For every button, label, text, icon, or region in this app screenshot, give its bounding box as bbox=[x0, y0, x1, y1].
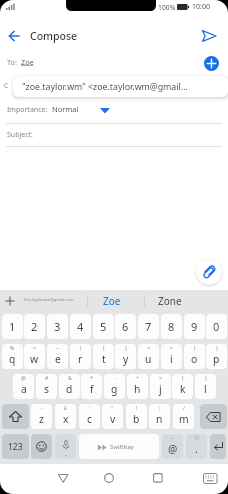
button[interactable]: ~ bbox=[47, 344, 68, 369]
button[interactable] bbox=[2, 292, 20, 310]
staticText: 0 bbox=[213, 319, 220, 334]
staticText: h bbox=[134, 382, 141, 396]
button[interactable] bbox=[148, 468, 168, 487]
staticText: C bbox=[4, 81, 9, 90]
staticText: r bbox=[78, 352, 83, 366]
button[interactable]: @ bbox=[13, 374, 34, 399]
button[interactable]: ) bbox=[195, 374, 216, 399]
staticText: 4 bbox=[77, 319, 84, 334]
button[interactable]: < bbox=[138, 344, 159, 369]
staticText: Subject: bbox=[7, 130, 33, 140]
button[interactable]: 0 bbox=[206, 314, 227, 339]
staticText: > bbox=[170, 344, 173, 351]
staticText: ~ bbox=[56, 344, 59, 351]
staticText: 2 bbox=[31, 319, 38, 334]
staticText: 7 bbox=[145, 319, 152, 334]
button[interactable]: £ bbox=[55, 404, 76, 429]
button[interactable] bbox=[196, 259, 222, 285]
button[interactable]: "zoe.taylor.wm" <zoe.taylor.wm@gmail... bbox=[13, 76, 228, 97]
button[interactable]: - bbox=[31, 404, 52, 429]
staticText: # bbox=[45, 374, 49, 381]
staticText: Importance: bbox=[7, 105, 48, 115]
button[interactable]: > bbox=[161, 344, 182, 369]
staticText: 9 bbox=[191, 319, 198, 334]
button[interactable]: * bbox=[81, 374, 102, 399]
staticText: & bbox=[68, 374, 72, 381]
staticText: f bbox=[90, 382, 94, 396]
staticText: + bbox=[136, 374, 139, 381]
staticText: Zoe.taylor.wm@gmail.com bbox=[24, 297, 74, 302]
button[interactable]: ' bbox=[79, 404, 100, 429]
staticText: ~ bbox=[171, 434, 174, 441]
button[interactable]: !? bbox=[186, 434, 207, 459]
button[interactable]: ( bbox=[184, 344, 205, 369]
button[interactable]: 6 bbox=[115, 314, 136, 339]
button[interactable]: 8 bbox=[161, 314, 182, 339]
button[interactable]: 5 bbox=[93, 314, 114, 339]
button[interactable]: [ bbox=[93, 344, 114, 369]
button[interactable]: 4 bbox=[70, 314, 91, 339]
button[interactable]: 7 bbox=[138, 314, 159, 339]
button[interactable] bbox=[96, 104, 114, 116]
button[interactable]: ^ bbox=[24, 344, 45, 369]
button[interactable]: ) bbox=[206, 344, 227, 369]
staticText: ) bbox=[205, 374, 207, 381]
staticText: 3 bbox=[54, 319, 61, 334]
button[interactable]: 1 bbox=[2, 314, 23, 339]
button[interactable]: # bbox=[36, 374, 57, 399]
button[interactable]: " bbox=[102, 404, 123, 429]
staticText: SwiftKey bbox=[110, 443, 134, 451]
button[interactable]: = bbox=[150, 374, 171, 399]
staticText: "zoe.taylor.wm" <zoe.taylor.wm@gmail... bbox=[22, 81, 188, 93]
staticText: ^ bbox=[33, 344, 36, 351]
staticText: j bbox=[159, 382, 162, 396]
button[interactable]: SwiftKey bbox=[79, 434, 159, 459]
button[interactable] bbox=[200, 470, 220, 487]
button[interactable]: 2 bbox=[24, 314, 45, 339]
button[interactable]: ( bbox=[172, 374, 193, 399]
button[interactable]: ] bbox=[115, 344, 136, 369]
button[interactable]: / bbox=[173, 404, 194, 429]
staticText: Zone bbox=[158, 294, 182, 308]
staticText: q bbox=[9, 352, 16, 366]
button[interactable]: 123 bbox=[2, 434, 29, 459]
staticText: ( bbox=[194, 344, 196, 351]
button[interactable]: 3 bbox=[47, 314, 68, 339]
staticText: < bbox=[147, 344, 150, 351]
button[interactable]: , bbox=[55, 434, 76, 459]
staticText: a bbox=[21, 382, 27, 396]
button[interactable] bbox=[199, 27, 221, 45]
button[interactable] bbox=[200, 404, 227, 429]
staticText: % bbox=[10, 344, 15, 351]
button[interactable] bbox=[210, 434, 226, 459]
staticText: 1 bbox=[9, 319, 16, 334]
button[interactable]: | bbox=[70, 344, 91, 369]
button[interactable] bbox=[31, 434, 52, 459]
button[interactable]: + bbox=[127, 374, 148, 399]
staticText: y bbox=[123, 352, 129, 366]
staticText: " bbox=[111, 404, 114, 411]
staticText: 8 bbox=[168, 319, 175, 334]
button[interactable]: % bbox=[2, 344, 23, 369]
button[interactable] bbox=[99, 468, 119, 487]
staticText: o bbox=[191, 352, 198, 366]
button[interactable]: Zone bbox=[146, 291, 194, 311]
button[interactable]: & bbox=[59, 374, 80, 399]
button[interactable] bbox=[53, 469, 73, 487]
button[interactable]: - bbox=[104, 374, 125, 399]
button[interactable]: Zoe bbox=[88, 291, 136, 311]
staticText: Normal bbox=[52, 104, 79, 114]
button[interactable]: ; bbox=[149, 404, 170, 429]
staticText: t bbox=[102, 352, 106, 366]
staticText: / bbox=[183, 404, 185, 411]
button[interactable] bbox=[4, 28, 24, 44]
staticText: £ bbox=[64, 404, 67, 411]
staticText: * bbox=[90, 374, 93, 381]
button[interactable]: ~ bbox=[162, 434, 183, 459]
button[interactable]: 9 bbox=[184, 314, 205, 339]
button[interactable] bbox=[2, 404, 29, 429]
button[interactable] bbox=[204, 56, 219, 71]
button[interactable]: ! bbox=[126, 404, 147, 429]
staticText: d bbox=[66, 382, 73, 396]
staticText: [ bbox=[103, 344, 105, 351]
